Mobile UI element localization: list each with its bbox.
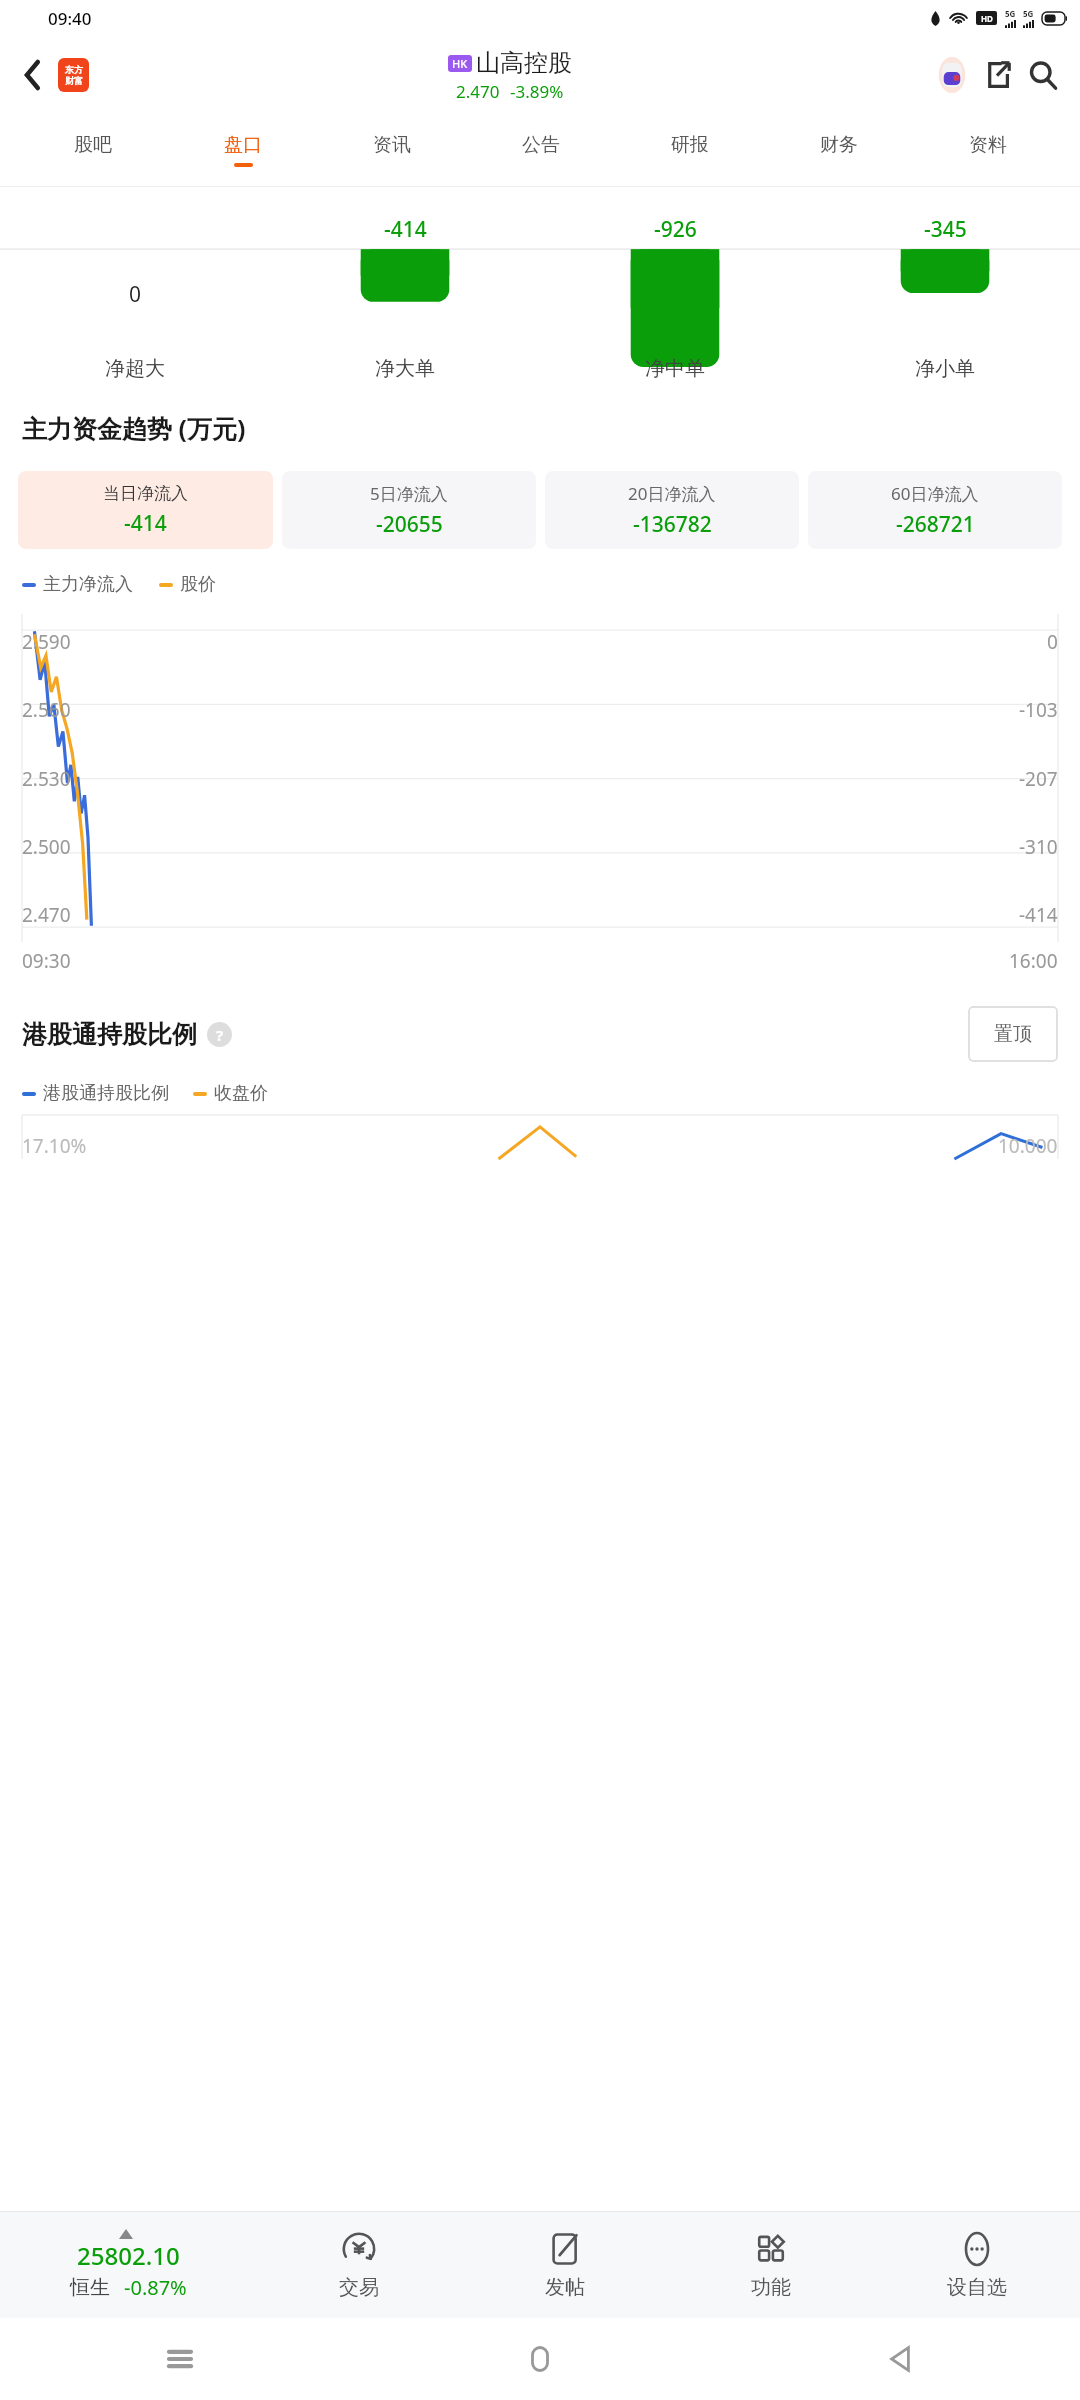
button[interactable]: 财务 [764, 114, 913, 186]
staticText: 盘口 [224, 133, 262, 157]
staticText: 2.470 [456, 80, 500, 103]
button[interactable]: 5日净流入 [282, 471, 536, 549]
staticText: 5G [1023, 8, 1034, 19]
staticText: 恒生 [70, 2275, 110, 2300]
button[interactable]: Search [1020, 52, 1066, 98]
staticText: HK [452, 56, 468, 71]
staticText: 主力资金趋势 (万元) [22, 411, 246, 445]
button[interactable]: 置顶 [968, 1006, 1058, 1062]
staticText: 09:40 [48, 7, 92, 30]
staticText: 净中单 [645, 356, 705, 381]
button[interactable]: 资讯 [317, 114, 466, 186]
staticText: 资料 [969, 133, 1007, 157]
staticText: 山高控股 [476, 48, 572, 78]
staticText: 10.000 [998, 1133, 1058, 1159]
button[interactable]: 60日净流入 [808, 471, 1062, 549]
staticText: 置顶 [994, 1022, 1032, 1046]
button[interactable]: Home [360, 2318, 720, 2400]
staticText: -926 [654, 215, 697, 244]
staticText: -136782 [633, 510, 712, 539]
staticText: 2.500 [22, 834, 71, 860]
staticText: 发帖 [545, 2275, 585, 2300]
button[interactable]: 25802.10 [0, 2212, 256, 2318]
button[interactable]: 盘口 [168, 114, 317, 186]
staticText: 5日净流入 [370, 482, 448, 505]
staticText: -20655 [376, 510, 443, 539]
button[interactable]: 股吧 [18, 114, 168, 186]
button[interactable]: Help [207, 1022, 232, 1047]
staticText: ? [216, 1025, 224, 1045]
staticText: 交易 [339, 2275, 379, 2300]
staticText: 研报 [671, 133, 709, 157]
button[interactable]: Back [720, 2318, 1080, 2400]
staticText: 09:30 [22, 948, 71, 974]
staticText: 0 [1047, 629, 1058, 655]
button[interactable]: 发帖 [462, 2212, 668, 2318]
staticText: 财务 [820, 133, 858, 157]
staticText: 当日净流入 [103, 483, 188, 504]
button[interactable]: 设自选 [874, 2212, 1080, 2318]
staticText: -414 [1019, 902, 1058, 928]
staticText: 16:00 [1009, 948, 1058, 974]
staticText: 净大单 [375, 356, 435, 381]
button[interactable]: 公告 [466, 114, 615, 186]
staticText: -103 [1019, 697, 1058, 723]
button[interactable]: 资料 [913, 114, 1062, 186]
staticText: -0.87% [124, 2274, 187, 2301]
button[interactable]: 当日净流入 [18, 471, 273, 549]
staticText: 东方 [65, 64, 83, 75]
staticText: 2.590 [22, 629, 71, 655]
button[interactable]: 东方财富 [58, 58, 89, 92]
button[interactable]: Back [14, 56, 52, 94]
staticText: 公告 [522, 133, 560, 157]
staticText: 17.10% [22, 1133, 87, 1159]
staticText: 设自选 [947, 2275, 1007, 2300]
staticText: -3.89% [510, 80, 564, 103]
staticText: 2.470 [22, 902, 71, 928]
staticText: -414 [384, 215, 427, 244]
staticText: 5G [1005, 8, 1016, 19]
staticText: 20日净流入 [628, 482, 716, 505]
staticText: -268721 [896, 510, 975, 539]
button[interactable]: Recents [0, 2318, 360, 2400]
button[interactable]: Share [974, 52, 1020, 98]
staticText: 功能 [751, 2275, 791, 2300]
staticText: 股价 [180, 573, 216, 596]
staticText: HD [981, 13, 993, 24]
staticText: 股吧 [74, 133, 112, 157]
staticText: -207 [1019, 766, 1058, 792]
staticText: 60日净流入 [891, 482, 979, 505]
button[interactable]: 功能 [668, 2212, 874, 2318]
staticText: -345 [924, 215, 967, 244]
button[interactable]: 交易 [256, 2212, 462, 2318]
staticText: 资讯 [373, 133, 411, 157]
staticText: -310 [1019, 834, 1058, 860]
staticText: -414 [124, 509, 167, 538]
staticText: 主力净流入 [43, 573, 133, 596]
staticText: 净超大 [105, 356, 165, 381]
staticText: 港股通持股比例 [22, 1019, 197, 1050]
staticText: 25802.10 [77, 2239, 180, 2272]
staticText: 收盘价 [214, 1082, 268, 1105]
button[interactable]: 20日净流入 [545, 471, 799, 549]
staticText: 港股通持股比例 [43, 1082, 169, 1105]
button[interactable]: 研报 [615, 114, 764, 186]
button[interactable]: AI助手 [930, 53, 974, 97]
staticText: 净小单 [915, 356, 975, 381]
staticText: 2.560 [22, 697, 71, 723]
staticText: 财富 [65, 75, 83, 86]
staticText: 2.530 [22, 766, 71, 792]
staticText: 0 [129, 280, 142, 309]
